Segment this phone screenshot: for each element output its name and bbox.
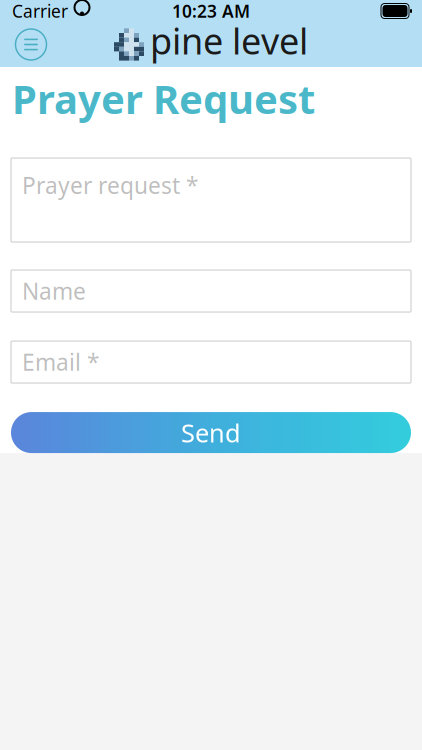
button[interactable]: Email * <box>11 341 411 383</box>
staticText: Carrier <box>12 0 68 22</box>
staticText: 10:23 AM <box>172 0 250 22</box>
staticText: P E N T E C O S T A L H O L I N E S S C … <box>150 65 261 72</box>
button[interactable]: Send <box>11 412 411 453</box>
button[interactable]: Prayer request * <box>11 158 411 242</box>
staticText: pine level <box>150 17 308 64</box>
staticText: Prayer request * <box>22 170 198 200</box>
staticText: Send <box>181 416 241 449</box>
button[interactable]: Name <box>11 270 411 312</box>
staticText: Email * <box>22 347 99 377</box>
staticText: Name <box>22 276 86 306</box>
staticText: Prayer Request <box>12 72 315 125</box>
button[interactable]: Menu <box>9 22 53 66</box>
